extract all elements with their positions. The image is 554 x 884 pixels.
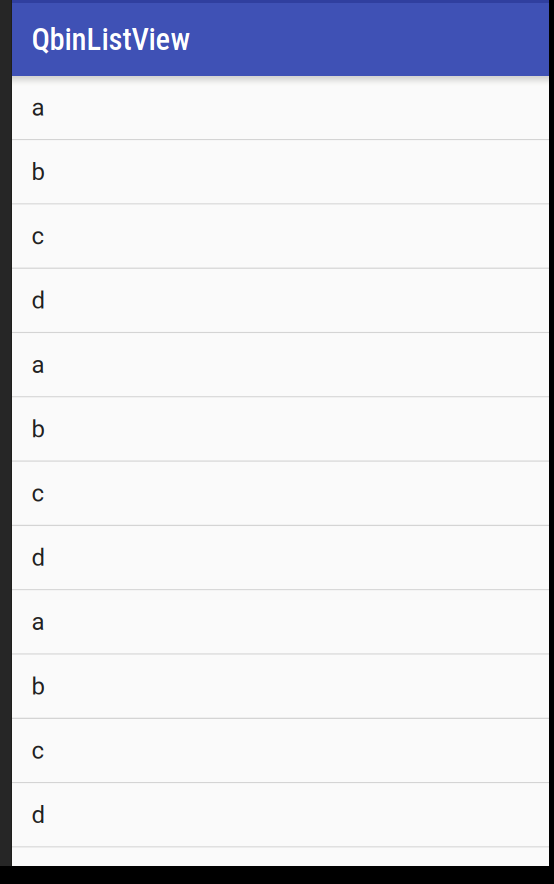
button[interactable]: b bbox=[12, 140, 549, 205]
button[interactable]: d bbox=[12, 269, 549, 333]
staticText: QbinListView bbox=[31, 21, 190, 57]
staticText: b bbox=[31, 672, 44, 700]
button[interactable]: b bbox=[12, 655, 549, 719]
staticText: a bbox=[31, 93, 44, 121]
button[interactable]: c bbox=[12, 462, 549, 526]
button[interactable]: a bbox=[12, 76, 549, 140]
button[interactable]: a bbox=[12, 848, 549, 884]
staticText: b bbox=[31, 158, 44, 186]
staticText: a bbox=[31, 865, 44, 884]
button[interactable]: a bbox=[12, 333, 549, 397]
button[interactable]: b bbox=[12, 397, 549, 462]
staticText: d bbox=[31, 801, 45, 829]
button[interactable]: a bbox=[12, 590, 549, 655]
staticText: d bbox=[31, 543, 45, 572]
staticText: a bbox=[31, 608, 44, 636]
staticText: c bbox=[31, 222, 44, 250]
button[interactable]: c bbox=[12, 205, 549, 269]
button[interactable]: c bbox=[12, 719, 549, 783]
staticText: c bbox=[31, 479, 44, 507]
staticText: d bbox=[31, 286, 45, 314]
staticText: a bbox=[31, 351, 44, 379]
staticText: c bbox=[31, 736, 44, 764]
button[interactable]: d bbox=[12, 526, 549, 590]
staticText: b bbox=[31, 415, 44, 443]
button[interactable]: d bbox=[12, 783, 549, 848]
